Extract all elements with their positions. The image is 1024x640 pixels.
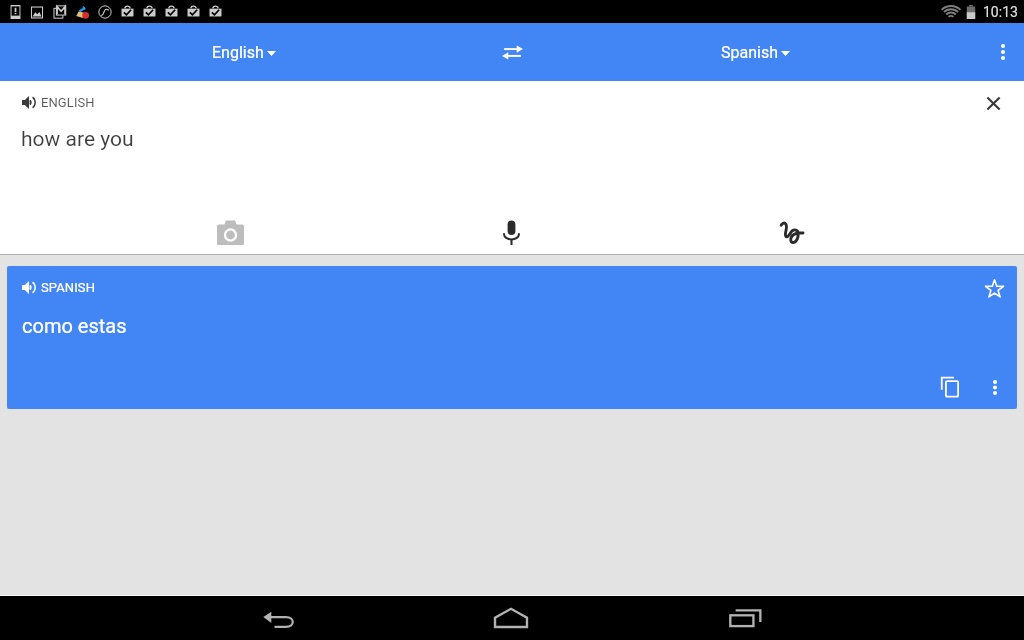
button[interactable]: Listen to translation	[7, 266, 1017, 409]
button[interactable]: Copy	[929, 367, 962, 402]
button[interactable]: Back	[239, 596, 319, 640]
staticText: Spanish	[721, 43, 778, 62]
button[interactable]: Star translation	[979, 273, 1010, 304]
button[interactable]: Spanish	[705, 31, 806, 74]
staticText: English	[212, 43, 264, 62]
button[interactable]: Handwriting input	[761, 208, 821, 256]
button[interactable]: Recents	[705, 596, 785, 640]
button[interactable]: Swap languages	[488, 30, 537, 75]
button[interactable]: Home	[471, 596, 551, 640]
button[interactable]: More options	[982, 31, 1024, 73]
button[interactable]: Clear	[975, 85, 1012, 122]
button[interactable]: Voice input	[481, 208, 541, 256]
button[interactable]: English	[196, 31, 292, 74]
staticText: SPANISH	[41, 280, 96, 295]
staticText: como estas	[22, 314, 127, 337]
staticText: ENGLISH	[41, 95, 95, 110]
button[interactable]: Camera input	[200, 208, 260, 256]
button[interactable]: Listen to translation	[16, 274, 102, 301]
button[interactable]: Listen to source text	[16, 89, 82, 116]
button[interactable]: More options	[980, 372, 1010, 397]
staticText: 10:13	[983, 4, 1018, 20]
staticText: how are you	[21, 127, 134, 152]
